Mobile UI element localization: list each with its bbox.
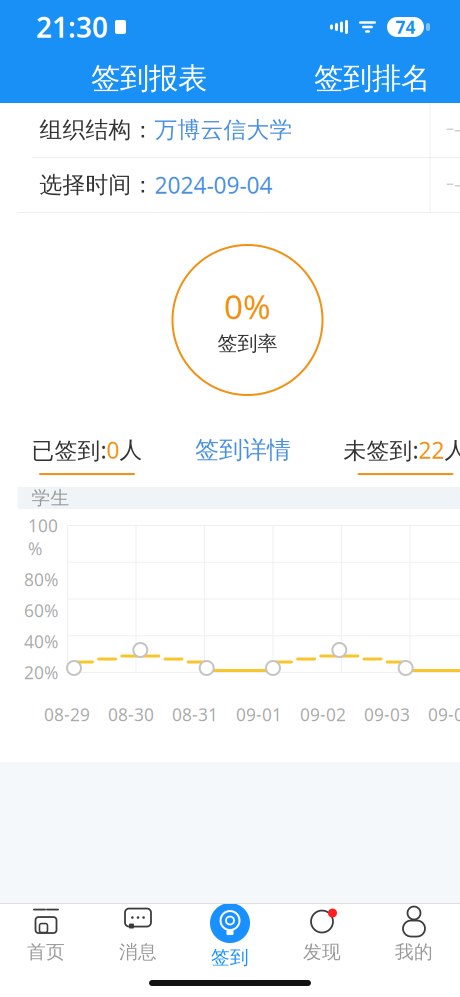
- staticText: 22: [418, 435, 444, 465]
- staticText: 08-31: [172, 703, 218, 726]
- staticText: 签到报表: [91, 60, 207, 96]
- button[interactable]: 我的: [368, 903, 460, 969]
- staticText: 选择时间：: [39, 171, 154, 199]
- staticText: 20%: [24, 661, 58, 684]
- staticText: 我的: [395, 940, 433, 963]
- staticText: 人: [444, 436, 460, 464]
- button[interactable]: 首页: [0, 903, 92, 969]
- staticText: 签到率: [217, 331, 277, 356]
- staticText: 09-01: [236, 703, 282, 726]
- button[interactable]: 发现: [276, 903, 368, 969]
- staticText: 人: [119, 436, 142, 464]
- button[interactable]: 组织结构：: [17, 103, 460, 157]
- staticText: 发现: [303, 940, 341, 963]
- button[interactable]: 未签到:: [343, 435, 460, 475]
- button[interactable]: 签到: [184, 903, 276, 969]
- staticText: 09-02: [300, 703, 346, 726]
- staticText: 已签到:: [31, 435, 106, 465]
- button[interactable]: 消息: [92, 903, 184, 969]
- staticText: 签到: [211, 946, 249, 969]
- staticText: 74: [395, 15, 415, 38]
- staticText: 09-04: [428, 703, 460, 726]
- staticText: 签到排名: [314, 60, 430, 96]
- button[interactable]: 签到排名: [298, 51, 446, 105]
- staticText: 08-29: [44, 703, 90, 726]
- staticText: 21:30: [36, 8, 108, 46]
- staticText: 0: [106, 435, 119, 465]
- button[interactable]: 签到详情: [183, 428, 303, 472]
- staticText: 首页: [27, 940, 65, 963]
- button[interactable]: 选择时间：: [17, 158, 460, 212]
- staticText: 40%: [24, 630, 58, 653]
- button[interactable]: 签到报表: [75, 51, 223, 105]
- staticText: 80%: [24, 568, 58, 591]
- staticText: 60%: [24, 599, 58, 622]
- button[interactable]: 已签到:: [31, 435, 142, 475]
- staticText: 08-30: [108, 703, 154, 726]
- staticText: 万博云信大学: [154, 116, 292, 144]
- staticText: 2024-09-04: [154, 170, 272, 200]
- staticText: 签到详情: [195, 435, 291, 465]
- staticText: 组织结构：: [39, 116, 154, 144]
- staticText: 未签到:: [343, 435, 418, 465]
- staticText: 09-03: [364, 703, 410, 726]
- staticText: 100%: [28, 514, 58, 560]
- staticText: 0%: [224, 284, 271, 328]
- staticText: 消息: [119, 940, 157, 963]
- staticText: 学生: [31, 486, 69, 509]
